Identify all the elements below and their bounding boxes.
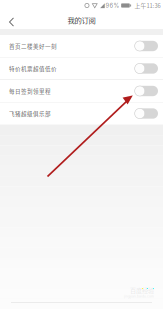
button[interactable]: 首页二楼美好一刻	[0, 35, 163, 57]
button[interactable]: 每日签到领里程	[0, 80, 163, 102]
staticText: 每日签到领里程	[9, 87, 51, 95]
button[interactable]: 飞猪超级俱乐部	[0, 102, 163, 124]
staticText: 特价机票超值低价	[9, 64, 57, 72]
staticText: 96%	[106, 2, 120, 9]
staticText: 首页二楼美好一刻	[9, 42, 57, 50]
button[interactable]: 特价机票超值低价	[0, 57, 163, 79]
staticText: 百度经验	[130, 285, 154, 294]
button[interactable]: Back	[0, 11, 23, 29]
staticText: 上午11:36	[134, 1, 160, 10]
staticText: 我的订阅	[67, 15, 95, 25]
staticText: 飞猪超级俱乐部	[9, 109, 51, 117]
